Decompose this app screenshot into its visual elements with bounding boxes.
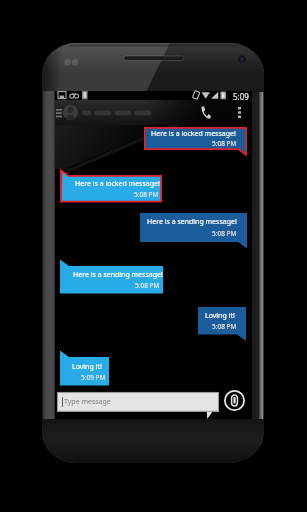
staticText: 5:08 PM [212,139,237,148]
button[interactable]: Navigate up [55,100,63,125]
button[interactable]: Here is a locked message! [144,127,247,157]
staticText: Here is a sending message! [147,217,237,227]
button[interactable]: Here is a locked message! [60,175,162,210]
button[interactable]: Here is a sending message! [60,266,163,301]
button[interactable]: Attach [224,390,245,411]
staticText: 5:08 PM [134,190,159,199]
staticText: 5:08 PM [212,322,237,331]
button[interactable]: Loving it! [198,307,246,342]
staticText: 5:08 PM [135,281,160,290]
staticText: Here is a locked message! [75,179,160,189]
button[interactable]: More options [232,100,246,125]
button[interactable]: Call [193,100,219,125]
button[interactable]: Here is a sending message! [140,213,247,249]
staticText: Here is a sending message! [73,270,163,280]
staticText: 5:09 [233,91,249,100]
staticText: Type message [64,397,111,407]
staticText: Loving it! [72,362,102,372]
staticText: 5:08 PM [212,229,237,238]
staticText: 5:09 PM [81,373,106,382]
staticText: Here is a locked message! [151,129,236,139]
button[interactable]: Loving it! [60,357,109,393]
staticText: Loving it! [205,311,235,321]
